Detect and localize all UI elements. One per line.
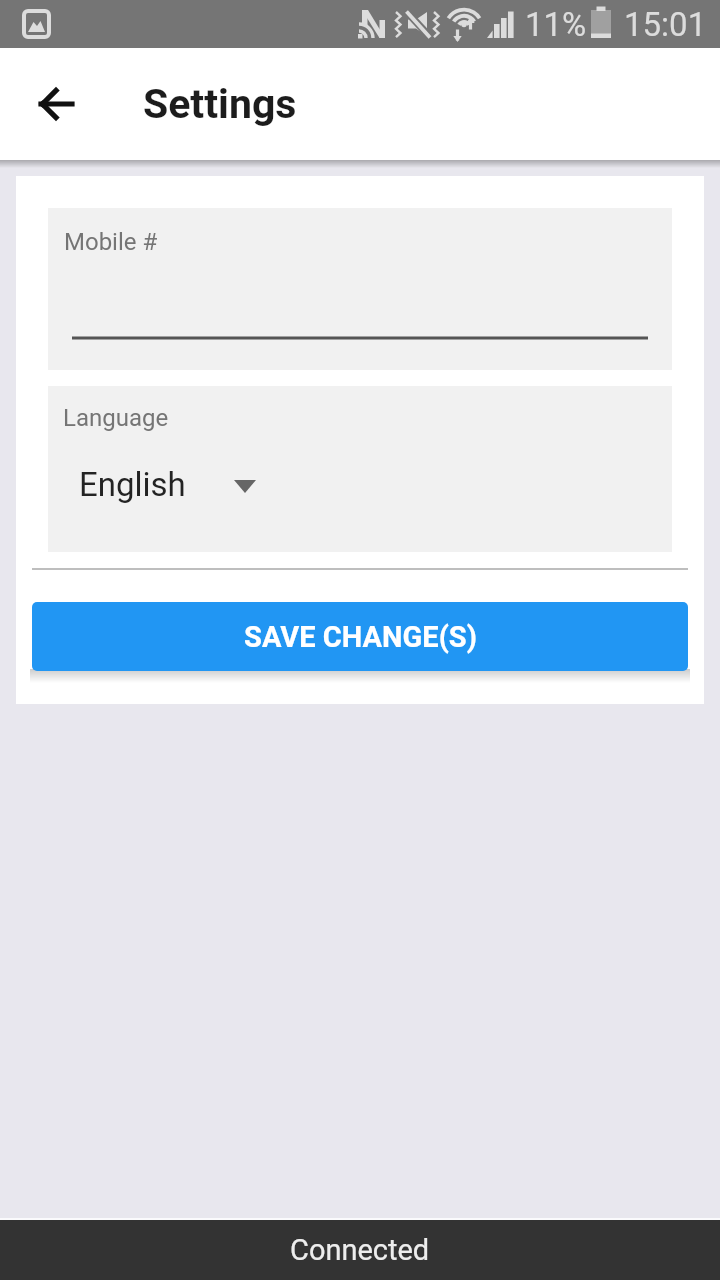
button[interactable]: Language [48, 386, 672, 552]
staticText: Language [63, 404, 169, 432]
staticText: Mobile # [64, 228, 158, 256]
button[interactable]: SAVE CHANGE(S) [32, 602, 688, 671]
staticText: 11% [525, 5, 587, 44]
button[interactable]: Mobile # [48, 208, 672, 370]
staticText: SAVE CHANGE(S) [244, 620, 477, 654]
button[interactable]: Back [18, 68, 90, 140]
staticText: 15:01 [624, 5, 707, 44]
staticText: English [79, 465, 186, 504]
staticText: Connected [290, 1233, 430, 1267]
staticText: Settings [143, 80, 297, 128]
